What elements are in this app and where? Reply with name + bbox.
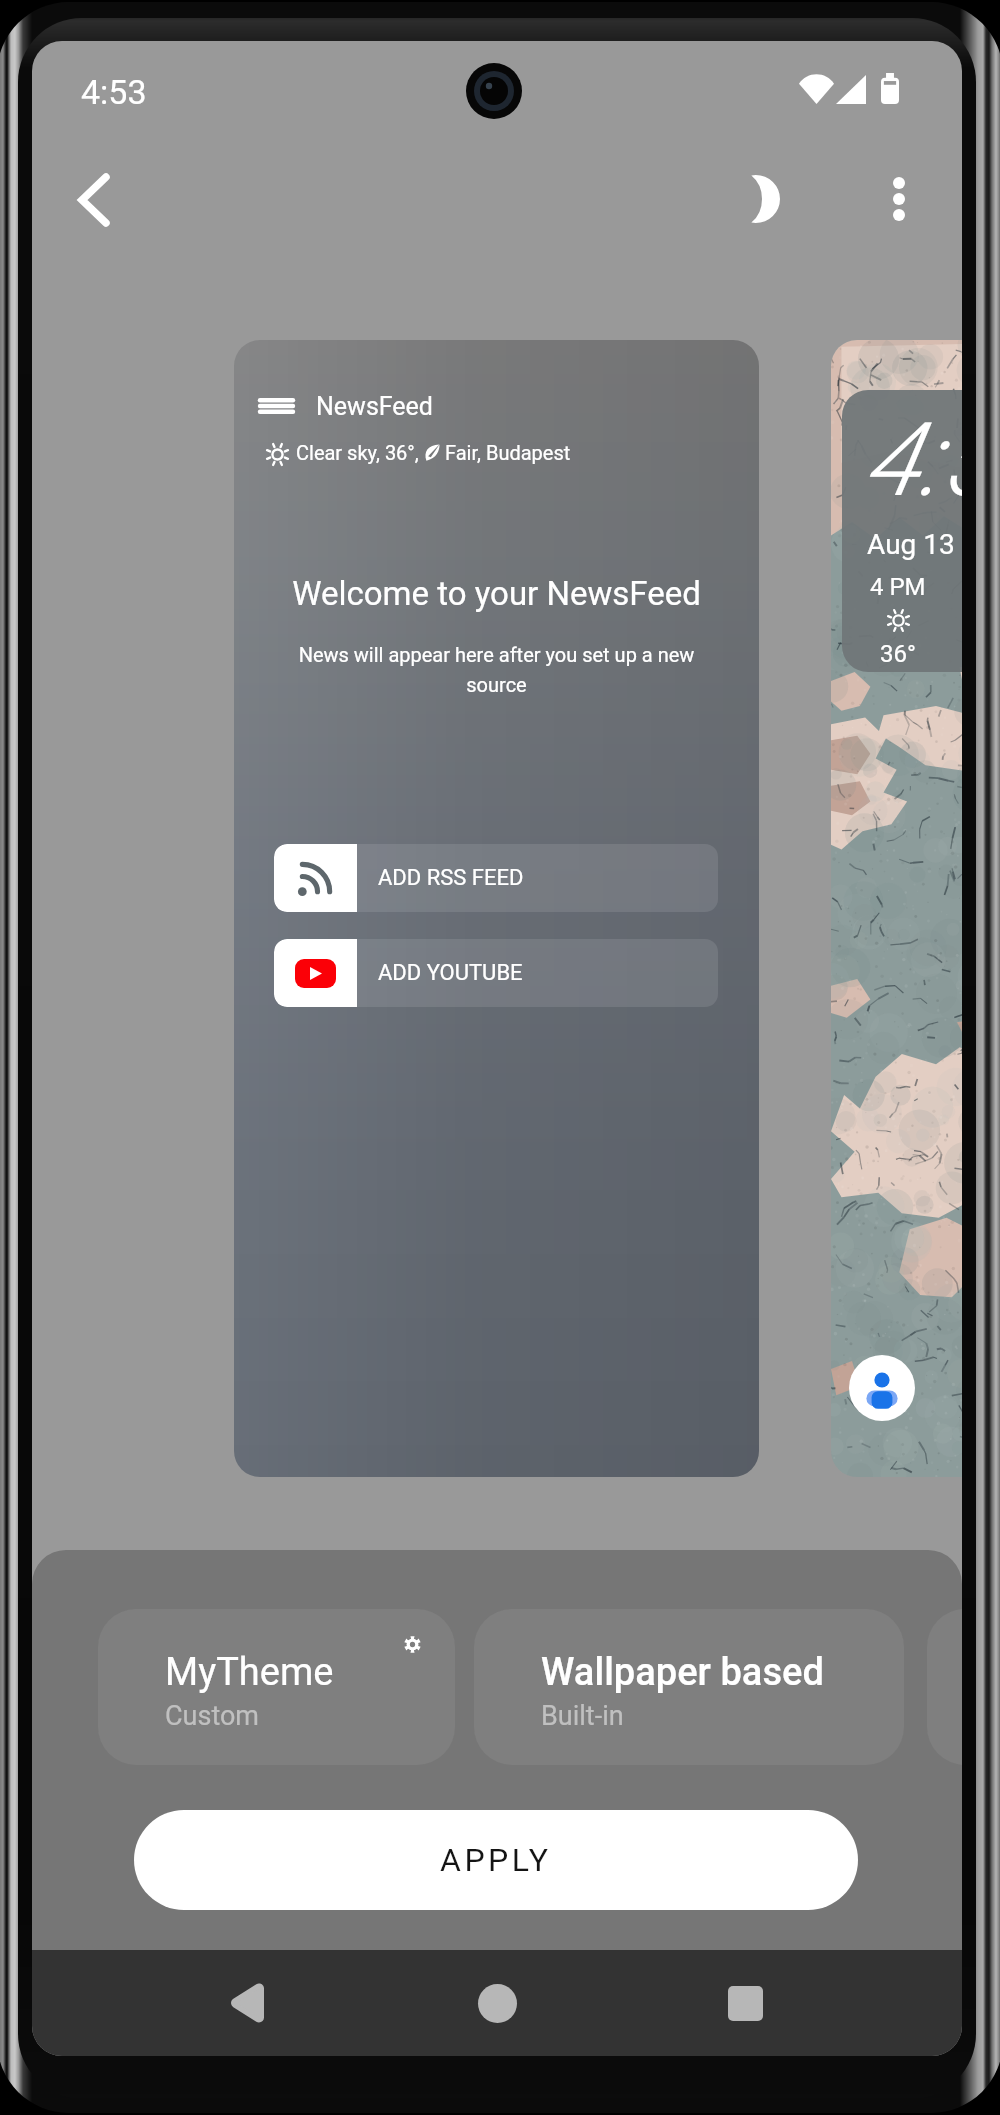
staticText: Aug 13 | Clear sky	[863, 528, 962, 561]
button[interactable]: MyTheme	[98, 1609, 455, 1765]
staticText: Custom	[165, 1700, 260, 1732]
button[interactable]: NewsFeed	[234, 340, 759, 1477]
button[interactable]: Recent apps	[690, 1950, 800, 2056]
staticText: Clear sky, 36°,	[296, 441, 419, 464]
button[interactable]: APPLY	[134, 1810, 858, 1910]
staticText: Fair, Budapest	[445, 441, 571, 464]
button[interactable]: 4:53	[831, 340, 962, 1477]
button[interactable]: Back	[62, 158, 126, 242]
staticText: 4:53	[842, 400, 962, 520]
staticText: Welcome to your NewsFeed	[234, 574, 759, 613]
staticText: News will appear here after you set up a…	[290, 643, 703, 697]
button[interactable]: Wallpaper based	[474, 1609, 904, 1765]
button[interactable]: Home	[442, 1950, 552, 2056]
button[interactable]: ADD YOUTUBE	[274, 939, 718, 1007]
staticText: Built-in	[541, 1700, 624, 1732]
button[interactable]: ADD RSS FEED	[274, 844, 718, 912]
staticText: ADD RSS FEED	[378, 865, 524, 891]
button[interactable]: Dark mode	[723, 157, 807, 241]
staticText: Wallpaper based	[541, 1650, 824, 1695]
staticText: ADD YOUTUBE	[378, 960, 523, 986]
staticText: MyTheme	[165, 1650, 334, 1695]
staticText: 4:53	[81, 72, 147, 112]
staticText: NewsFeed	[316, 392, 433, 421]
staticText: 4 PM	[870, 573, 926, 601]
staticText: 36°	[880, 640, 916, 668]
button[interactable]: Back	[192, 1950, 302, 2056]
button[interactable]: More options	[857, 157, 941, 241]
button[interactable]: Account	[849, 1355, 915, 1421]
staticText: APPLY	[440, 1841, 552, 1879]
